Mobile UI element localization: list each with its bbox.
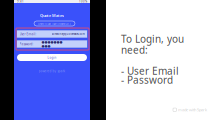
staticText: 100% <box>79 0 87 3</box>
button[interactable]: Login <box>17 54 87 61</box>
staticText: Login <box>47 55 56 59</box>
button[interactable]: Where to get login credentials ? <box>34 21 75 26</box>
staticText: To Login, you <box>121 32 184 46</box>
staticText: Quote Mates <box>40 13 64 18</box>
staticText: Where to get login credentials ? <box>38 22 71 25</box>
staticText: Password: <box>19 42 33 46</box>
staticText: made with Spark <box>178 107 207 112</box>
staticText: - Password <box>121 73 173 87</box>
staticText: need: <box>121 43 148 57</box>
staticText: - User Email <box>121 64 179 78</box>
staticText: someone@quotemates.com <box>51 32 84 36</box>
staticText: powered by spark <box>38 69 65 73</box>
staticText: 9:41 <box>17 0 24 3</box>
staticText: User Email: <box>19 32 36 36</box>
staticText: ●●●●●●●●●● <box>41 40 62 48</box>
